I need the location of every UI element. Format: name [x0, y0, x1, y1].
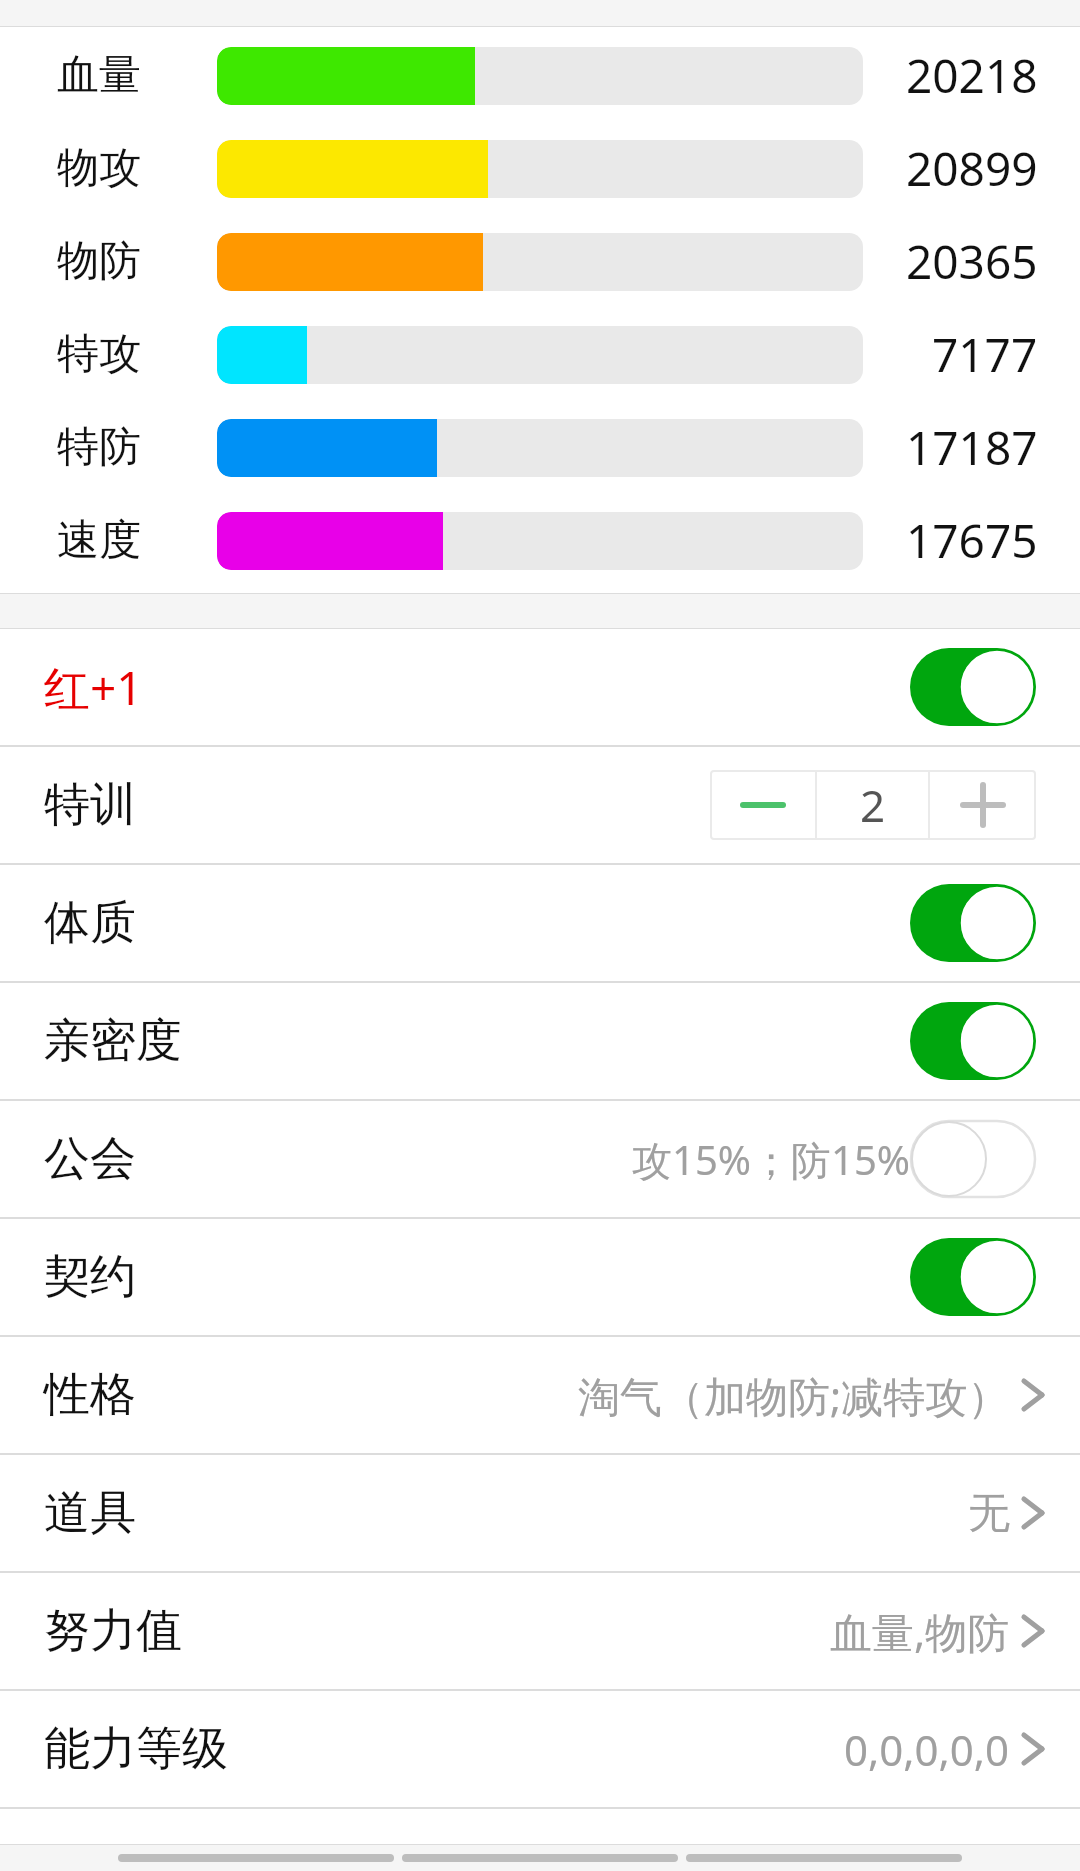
staticText: 20365 [906, 230, 1038, 293]
button[interactable]: 体质 [0, 865, 1080, 981]
button[interactable]: 公会 [0, 1101, 1080, 1217]
staticText: 物防 [57, 235, 141, 288]
button[interactable]: Toggle on [910, 1002, 1036, 1080]
staticText: 0,0,0,0,0 [844, 1721, 1010, 1778]
button[interactable]: 能力等级 [0, 1691, 1080, 1807]
staticText: 2 [860, 775, 886, 835]
staticText: 17675 [906, 509, 1038, 572]
button[interactable]: 特攻 [0, 308, 1080, 401]
staticText: 攻15%；防15% [632, 1132, 910, 1187]
staticText: 努力值 [44, 1602, 182, 1660]
button[interactable]: Toggle on [910, 648, 1036, 726]
button[interactable]: 血量 [0, 29, 1080, 122]
button[interactable]: 速度 [0, 494, 1080, 587]
staticText: 亲密度 [44, 1012, 182, 1070]
staticText: 特训 [44, 776, 136, 834]
staticText: 公会 [44, 1130, 136, 1188]
staticText: 7177 [932, 323, 1038, 386]
staticText: 红+1 [44, 656, 143, 719]
button[interactable]: Toggle on [910, 1238, 1036, 1316]
staticText: 性格 [44, 1366, 136, 1424]
staticText: 契约 [44, 1248, 136, 1306]
button[interactable]: Toggle on [910, 884, 1036, 962]
staticText: 特防 [57, 421, 141, 474]
button[interactable]: 物防 [0, 215, 1080, 308]
staticText: 特攻 [57, 328, 141, 381]
button[interactable]: 红+1 [0, 629, 1080, 745]
staticText: 20218 [906, 44, 1038, 107]
button[interactable]: Toggle off [910, 1120, 1036, 1198]
staticText: 能力等级 [44, 1720, 228, 1778]
button[interactable]: 契约 [0, 1219, 1080, 1335]
staticText: 淘气（加物防;减特攻） [578, 1367, 1010, 1424]
button[interactable]: 性格 [0, 1337, 1080, 1453]
button[interactable]: 物攻 [0, 122, 1080, 215]
button[interactable]: 特训 [0, 747, 1080, 863]
staticText: 血量 [57, 49, 141, 102]
button[interactable]: 道具 [0, 1455, 1080, 1571]
staticText: 17187 [906, 416, 1038, 479]
staticText: 体质 [44, 894, 136, 952]
staticText: 血量,物防 [830, 1603, 1010, 1660]
button[interactable]: Decrease [710, 770, 815, 840]
button[interactable]: 特防 [0, 401, 1080, 494]
staticText: 无 [968, 1487, 1010, 1540]
button[interactable]: Increase [930, 770, 1036, 840]
button[interactable]: 努力值 [0, 1573, 1080, 1689]
staticText: 速度 [57, 514, 141, 567]
staticText: 物攻 [57, 142, 141, 195]
staticText: 道具 [44, 1484, 136, 1542]
staticText: 20899 [906, 137, 1038, 200]
button[interactable]: 亲密度 [0, 983, 1080, 1099]
